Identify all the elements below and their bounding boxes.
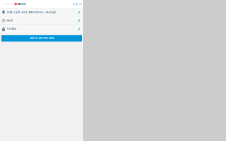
button[interactable]: Change order type	[0, 25, 83, 33]
staticText: Confirm and View Menu	[30, 37, 54, 39]
button[interactable]: Change location	[0, 8, 83, 16]
staticText: POWERED BY	[4, 3, 13, 5]
staticText: Pickup	[7, 27, 17, 30]
button[interactable]: Change time	[0, 17, 83, 25]
button[interactable]: Log in	[73, 2, 81, 6]
staticText: Log in	[73, 2, 81, 6]
staticText: moxie	[17, 2, 26, 6]
staticText: Now	[7, 19, 13, 22]
button[interactable]: Confirm and View Menu	[1, 35, 82, 41]
staticText: Kiwi cafe and smoothies - raleigh	[7, 11, 57, 14]
